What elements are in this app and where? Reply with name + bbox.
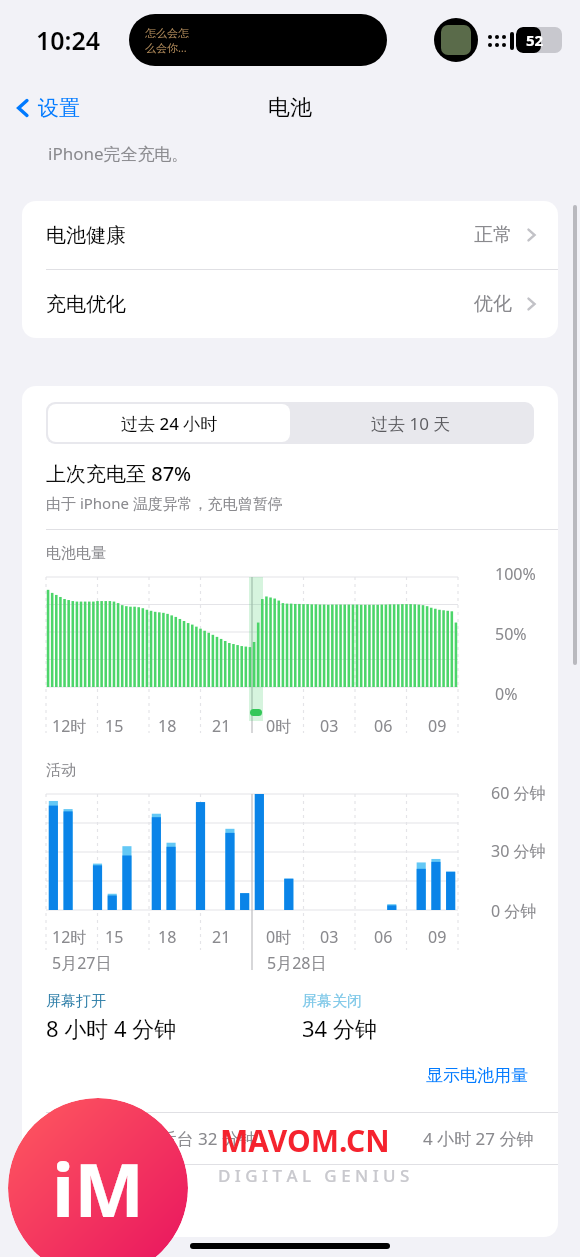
staticText: 由于 iPhone 温度异常，充电曾暂停 [46,493,283,513]
staticText: 30 分钟 [491,840,546,862]
staticText: 正常 [474,223,512,247]
staticText: 么会你… [145,40,187,55]
staticText: 21 [212,926,231,948]
staticText: 电池 [268,94,312,122]
staticText: 10:24 [36,23,101,57]
staticText: 60 分钟 [491,782,546,804]
button[interactable]: 设置 [0,91,92,125]
staticText: iPhone完全充电。 [48,142,189,165]
staticText: 充电优化 [46,292,126,317]
staticText: 0时 [266,926,292,948]
staticText: 5月27日 [52,952,112,974]
staticText: D I G I T A L G E N I U S [218,1164,410,1187]
staticText: 0 分钟 [491,900,537,922]
button[interactable]: 显示电池用量 [420,1059,534,1092]
staticText: 4 小时 27 分钟 [423,1127,534,1150]
staticText: 屏幕打开 [46,992,106,1011]
staticText: 09 [428,715,447,737]
staticText: 上次充电至 87% [46,460,192,487]
staticText: MAVOM.CN [220,1120,390,1161]
staticText: 15 [105,926,124,948]
staticText: 电池电量 [46,544,106,563]
staticText: 小时 55 分钟 – 后台 32 分钟 [46,1127,256,1150]
staticText: 设置 [38,95,80,121]
staticText: 5月28日 [267,952,327,974]
staticText: 微信 [94,1188,130,1211]
button[interactable]: 电池健康 [22,201,558,269]
staticText: 18 [158,715,177,737]
staticText: 8 小时 4 分钟 [46,1013,177,1043]
staticText: 100% [495,563,536,585]
staticText: 活动 [46,761,76,780]
staticText: 0时 [266,715,292,737]
staticText: 52 [526,30,544,50]
staticText: iM [52,1138,144,1239]
staticText: 50% [495,623,527,645]
staticText: 06 [374,715,393,737]
staticText: 12时 [52,926,87,948]
staticText: 21 [212,715,231,737]
staticText: 34 分钟 [302,1013,377,1043]
staticText: 过去 10 天 [371,412,451,435]
staticText: 显示电池用量 [426,1065,528,1086]
button[interactable]: 过去 10 天 [290,404,532,442]
staticText: 18 [158,926,177,948]
staticText: 12时 [52,715,87,737]
button[interactable]: 过去 24 小时 [48,404,290,442]
staticText: 怎么会怎 [145,26,189,40]
staticText: 03 [320,926,339,948]
staticText: 06 [374,926,393,948]
staticText: 电池健康 [46,223,126,248]
staticText: 0% [495,683,518,705]
staticText: 09 [428,926,447,948]
staticText: 过去 24 小时 [121,412,218,435]
staticText: 屏幕关闭 [302,992,362,1011]
button[interactable]: 充电优化 [22,270,558,338]
staticText: 03 [320,715,339,737]
staticText: 15 [105,715,124,737]
staticText: 优化 [474,292,512,316]
